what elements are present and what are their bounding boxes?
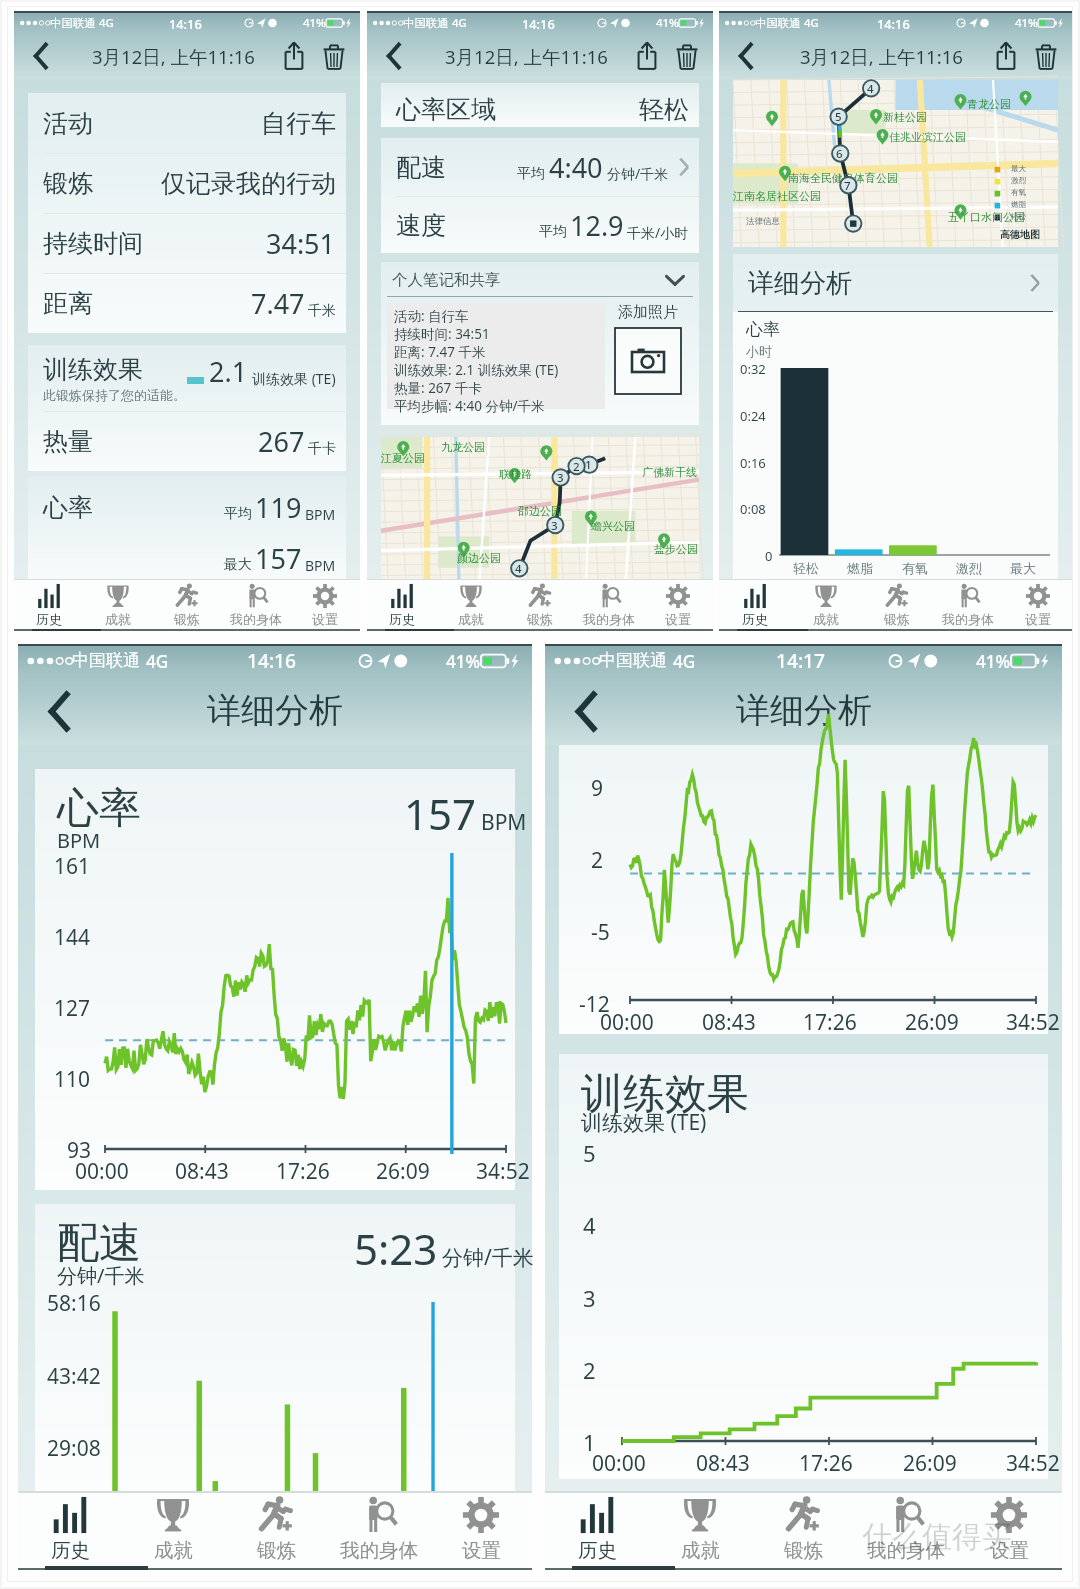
staticText: 3月12日, 上午11:16 <box>445 44 608 69</box>
button[interactable]: 历史 <box>14 579 83 633</box>
staticText: 4G <box>99 15 114 31</box>
button[interactable]: Back <box>23 678 89 744</box>
staticText: 分钟/千米 <box>607 164 669 183</box>
staticText: 分钟/千米 <box>442 1243 534 1272</box>
staticText: 12.9 <box>570 207 624 244</box>
button[interactable]: Share <box>984 34 1028 78</box>
staticText: 有氧 <box>902 560 928 576</box>
staticText: 成就 <box>681 1538 720 1563</box>
staticText: 14:16 <box>169 15 202 32</box>
staticText: 锻炼 <box>43 168 93 199</box>
button[interactable]: 历史 <box>545 1491 648 1574</box>
staticText: 5:23 <box>354 1220 438 1277</box>
staticText: 蟾兴公园 <box>591 519 635 533</box>
button[interactable]: 我的身体 <box>221 579 290 633</box>
button[interactable]: 热量 <box>28 411 346 471</box>
staticText: 小时 <box>746 343 772 359</box>
button[interactable]: Back <box>550 678 616 744</box>
staticText: 00:00 <box>600 1008 654 1037</box>
button[interactable]: Delete <box>312 34 356 78</box>
button[interactable]: 设置 <box>1003 579 1072 633</box>
staticText: 34:52 <box>1006 1449 1060 1478</box>
button[interactable]: 锻炼 <box>861 579 932 633</box>
button[interactable]: Delete <box>1024 34 1068 78</box>
staticText: 热量: 267 千卡 <box>394 379 482 397</box>
button[interactable]: 设置 <box>643 579 712 633</box>
button[interactable]: 历史 <box>367 579 436 633</box>
button[interactable]: 我的身体 <box>932 579 1003 633</box>
staticText: BPM <box>57 827 101 854</box>
button[interactable]: Delete <box>665 34 709 78</box>
button[interactable]: 详细分析 <box>733 254 1058 312</box>
button[interactable]: Share <box>625 34 669 78</box>
button[interactable]: 活动 <box>28 93 346 153</box>
button[interactable]: 距离 <box>28 273 346 333</box>
staticText: 00:00 <box>75 1157 129 1186</box>
button[interactable]: 成就 <box>436 579 505 633</box>
staticText: 26:09 <box>376 1157 430 1186</box>
button[interactable]: 配速 <box>381 138 699 196</box>
staticText: 17:26 <box>276 1157 330 1186</box>
button[interactable]: 历史 <box>18 1491 121 1574</box>
staticText: 历史 <box>578 1538 617 1563</box>
staticText: 4:40 <box>549 149 603 186</box>
staticText: BPM <box>305 505 336 524</box>
button[interactable]: 锻炼 <box>28 153 346 213</box>
button[interactable]: 成就 <box>790 579 861 633</box>
button[interactable]: 成就 <box>83 579 152 633</box>
staticText: 详细分析 <box>207 689 343 732</box>
button[interactable]: 设置 <box>430 1491 532 1574</box>
button[interactable]: Back <box>370 34 414 78</box>
staticText: 144 <box>54 923 91 952</box>
staticText: 我的身体 <box>340 1538 418 1563</box>
staticText: -5 <box>591 918 610 947</box>
staticText: BPM <box>481 808 527 837</box>
staticText: 激烈 <box>956 560 982 576</box>
staticText: 心率 <box>43 492 93 523</box>
staticText: 训练效果 (TE) <box>252 369 336 388</box>
button[interactable]: 最大 <box>28 537 346 579</box>
staticText: 轻松 <box>793 560 819 576</box>
button[interactable]: 我的身体 <box>854 1491 957 1574</box>
staticText: 157 <box>404 785 477 842</box>
staticText: 0:16 <box>740 454 766 472</box>
button[interactable]: 锻炼 <box>224 1491 327 1574</box>
button[interactable]: 我的身体 <box>574 579 643 633</box>
button[interactable]: 历史 <box>719 579 790 633</box>
staticText: 锻炼 <box>884 611 910 627</box>
staticText: 设置 <box>1025 611 1051 627</box>
button[interactable] <box>381 83 699 127</box>
button[interactable]: 成就 <box>121 1491 224 1574</box>
button[interactable]: 设置 <box>957 1491 1060 1574</box>
staticText: 平均步幅: 4:40 分钟/千米 <box>394 397 545 413</box>
staticText: 267 <box>258 423 305 460</box>
staticText: 127 <box>54 994 91 1023</box>
staticText: 08:43 <box>175 1157 229 1186</box>
button[interactable]: 锻炼 <box>505 579 574 633</box>
button[interactable]: 锻炼 <box>152 579 221 633</box>
button[interactable]: 设置 <box>290 579 359 633</box>
staticText: 颜边公园 <box>457 551 501 565</box>
staticText: 锻炼 <box>257 1538 296 1563</box>
staticText: 五丫口水闸公园 <box>948 210 1025 224</box>
staticText: 自行车 <box>261 108 336 139</box>
button[interactable]: 持续时间 <box>28 213 346 273</box>
button[interactable]: 个人笔记和共享 <box>381 262 699 297</box>
button[interactable]: Back <box>722 34 766 78</box>
button[interactable]: 锻炼 <box>751 1491 854 1574</box>
button[interactable]: Add photo <box>615 328 681 394</box>
staticText: 历史 <box>742 611 768 627</box>
staticText: 联桂路 <box>499 467 532 481</box>
staticText: 17:26 <box>803 1008 857 1037</box>
staticText: 训练效果 <box>581 1068 749 1121</box>
button[interactable]: 速度 <box>381 196 699 254</box>
staticText: 江夏公园 <box>381 451 425 465</box>
staticText: -12 <box>579 990 610 1019</box>
button[interactable]: 我的身体 <box>327 1491 430 1574</box>
button[interactable]: Share <box>272 34 316 78</box>
staticText: 训练效果 (TE) <box>581 1108 707 1137</box>
staticText: 41% <box>656 15 679 31</box>
button[interactable]: 心率 <box>28 477 346 537</box>
button[interactable]: 成就 <box>648 1491 751 1574</box>
button[interactable]: Back <box>17 34 61 78</box>
